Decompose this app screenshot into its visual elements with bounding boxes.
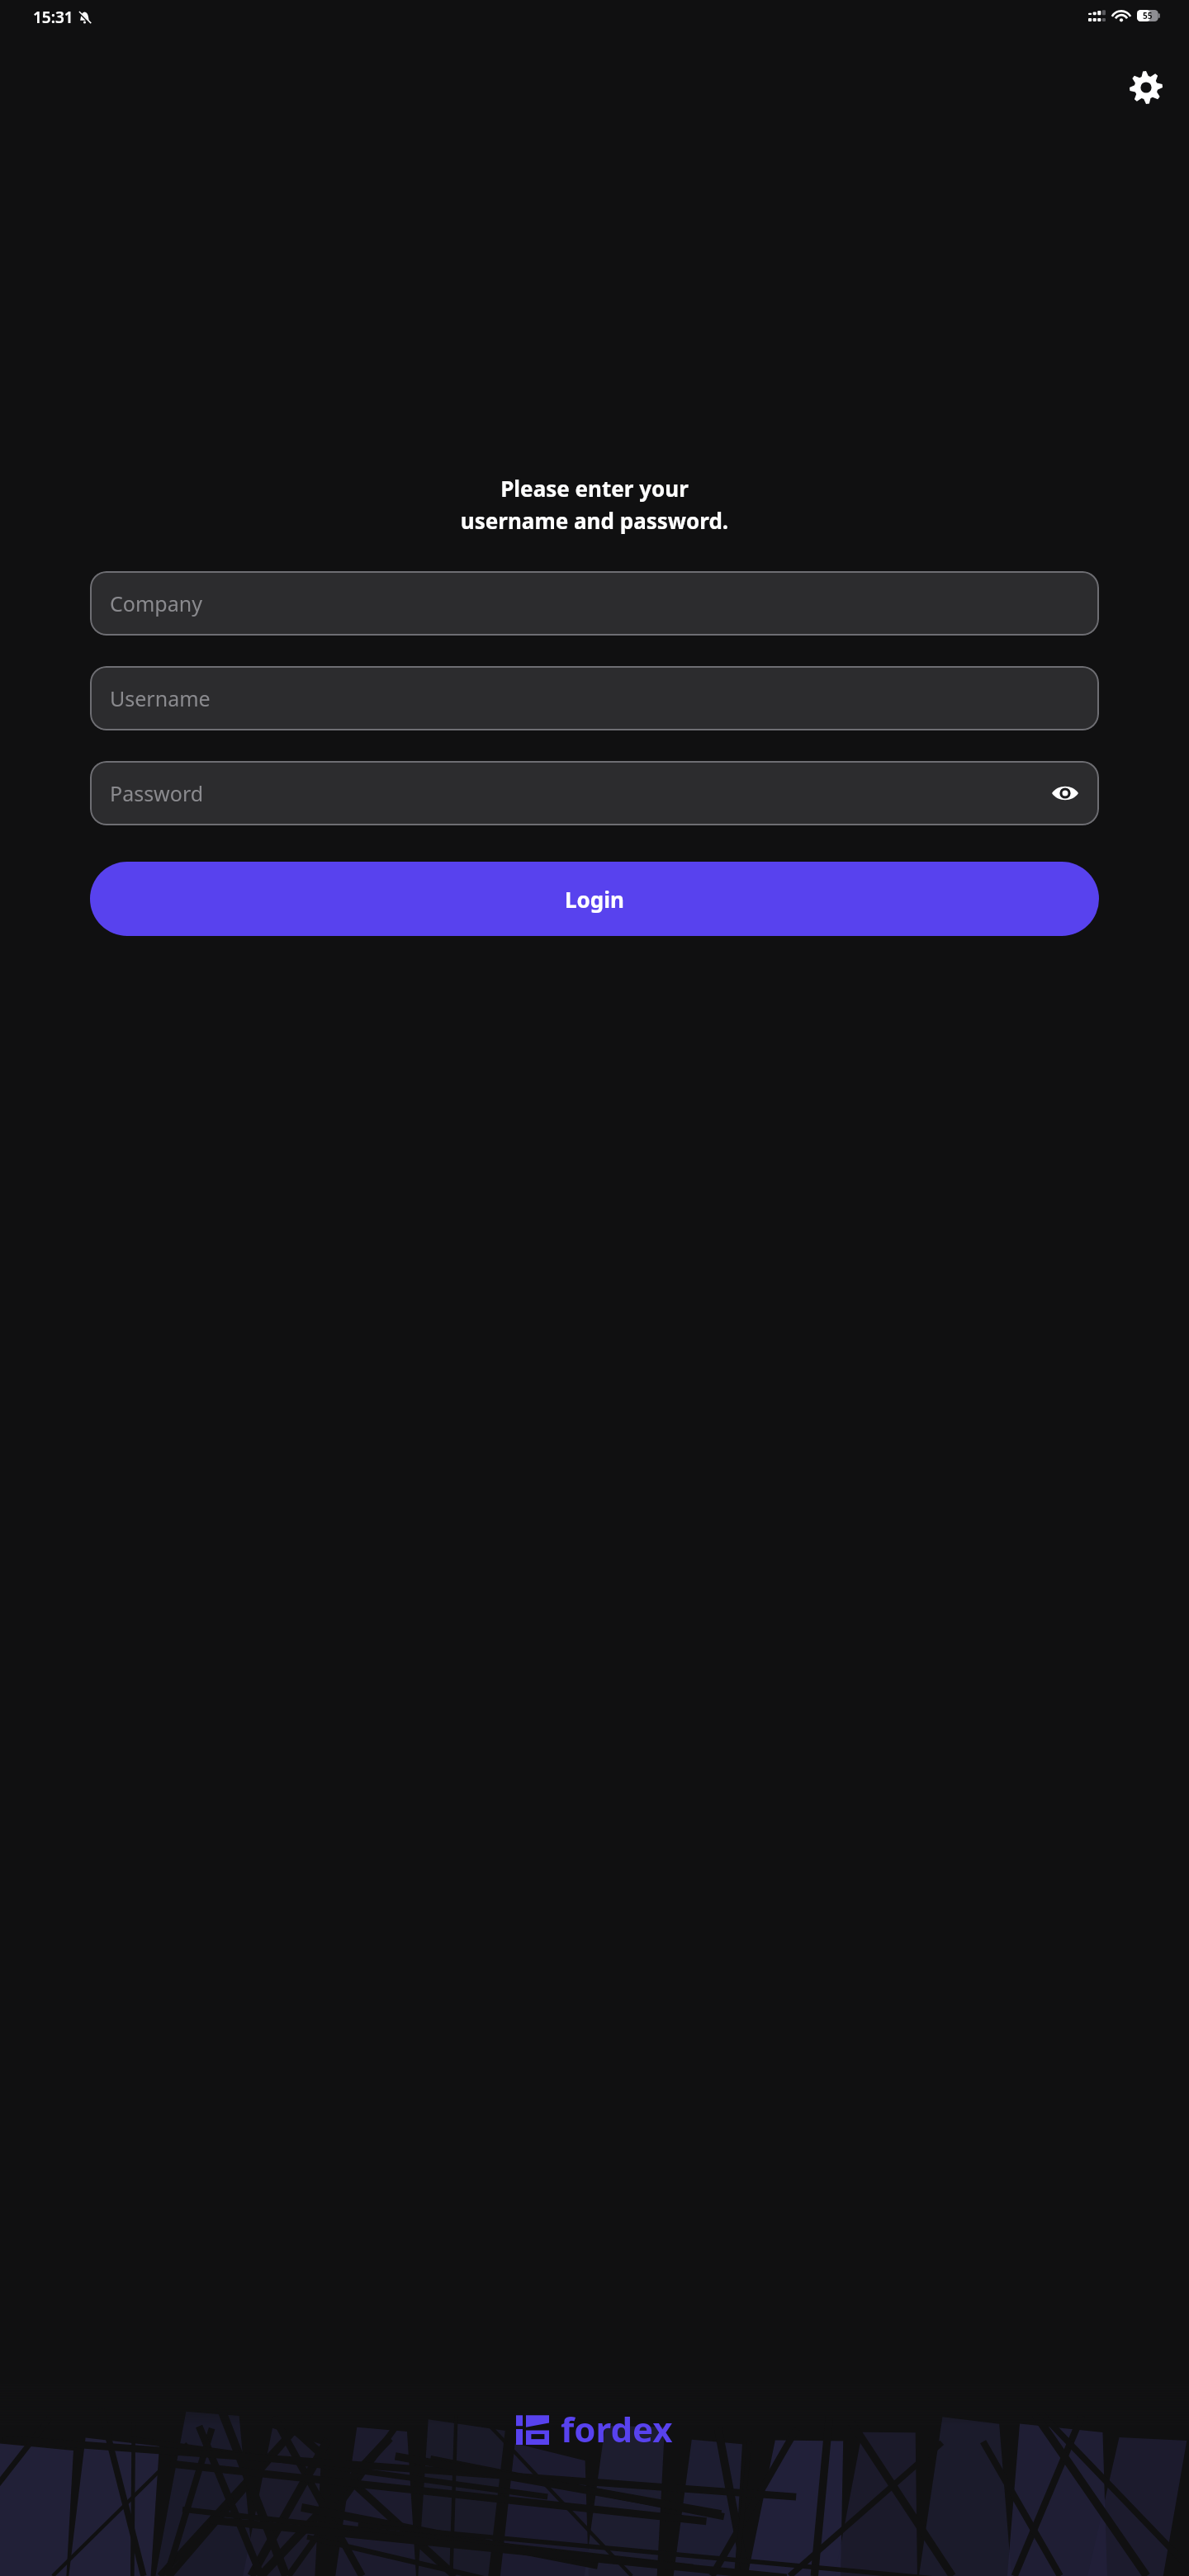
- staticText: 55: [1143, 10, 1153, 21]
- button[interactable]: Settings: [1123, 64, 1169, 111]
- button[interactable]: Company: [90, 571, 1099, 636]
- button[interactable]: Password: [90, 761, 1099, 825]
- staticText: Username: [110, 684, 211, 712]
- staticText: Login: [565, 885, 624, 914]
- button[interactable]: Username: [90, 666, 1099, 730]
- staticText: fordex: [561, 2405, 673, 2452]
- button[interactable]: Show password: [1046, 774, 1084, 812]
- button[interactable]: Login: [90, 862, 1099, 936]
- staticText: Password: [110, 779, 204, 807]
- staticText: Company: [110, 589, 202, 617]
- staticText: Please enter your username and password.: [0, 474, 1189, 535]
- staticText: 15:31: [33, 7, 73, 28]
